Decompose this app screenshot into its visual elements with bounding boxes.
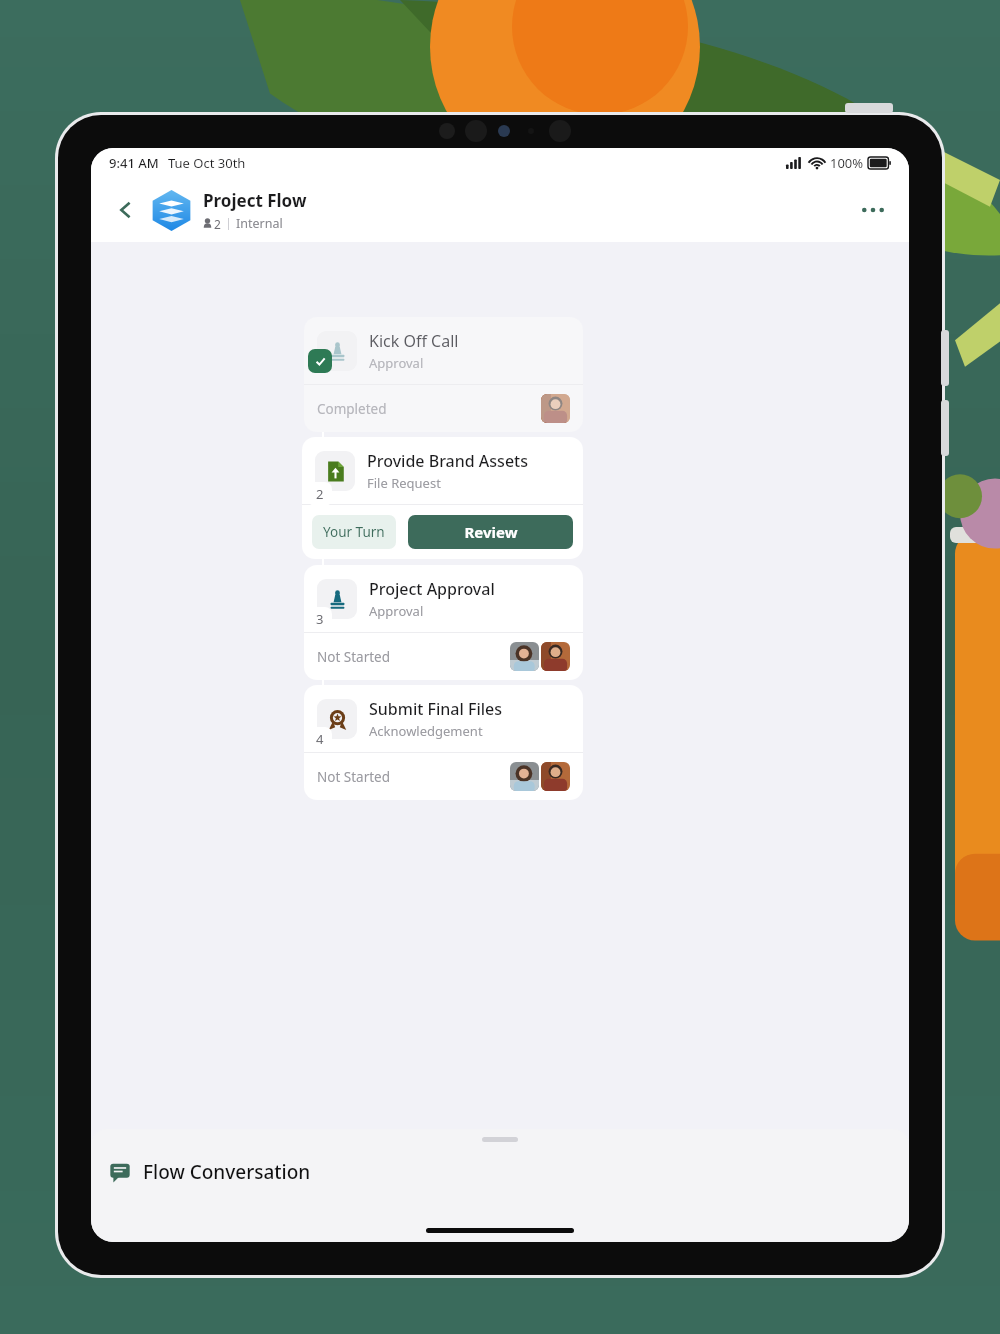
- staticText: 9:41 AM: [109, 154, 159, 172]
- staticText: Tue Oct 30th: [168, 154, 246, 172]
- button[interactable]: Provide Brand Assets: [302, 437, 583, 559]
- button[interactable]: Kick Off Call: [304, 317, 583, 432]
- button[interactable]: Project Approval: [304, 565, 583, 680]
- staticText: Flow Conversation: [143, 1159, 311, 1185]
- staticText: Kick Off Call: [369, 330, 459, 352]
- staticText: Not Started: [317, 768, 391, 786]
- staticText: 2: [316, 485, 324, 503]
- staticText: Internal: [236, 215, 283, 232]
- staticText: File Request: [367, 474, 441, 492]
- staticText: Project Approval: [369, 578, 495, 600]
- button[interactable]: More options: [853, 190, 893, 230]
- button[interactable]: Review: [408, 515, 573, 549]
- staticText: Completed: [317, 400, 387, 418]
- staticText: 2: [214, 216, 221, 232]
- button[interactable]: Submit Final Files: [304, 685, 583, 800]
- staticText: Your Turn: [323, 523, 385, 541]
- staticText: 3: [316, 610, 324, 628]
- button[interactable]: Flow Conversation: [91, 1129, 909, 1242]
- staticText: Review: [464, 522, 518, 542]
- button[interactable]: Your Turn: [312, 515, 396, 549]
- staticText: Not Started: [317, 648, 391, 666]
- staticText: Project Flow: [203, 189, 307, 212]
- staticText: Provide Brand Assets: [367, 450, 528, 472]
- staticText: 100%: [830, 154, 864, 172]
- button[interactable]: Back: [107, 191, 145, 229]
- staticText: 4: [316, 730, 324, 748]
- staticText: Approval: [369, 602, 424, 620]
- staticText: Acknowledgement: [369, 722, 483, 740]
- staticText: Approval: [369, 354, 424, 372]
- staticText: Submit Final Files: [369, 698, 502, 720]
